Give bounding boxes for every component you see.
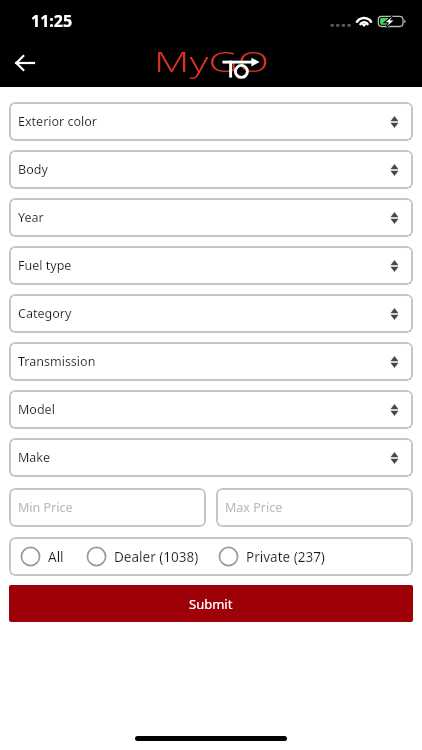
staticText: Min Price: [18, 499, 73, 516]
button[interactable]: Exterior color: [9, 102, 413, 141]
button[interactable]: Min Price: [9, 488, 206, 527]
staticText: Fuel type: [18, 257, 72, 274]
staticText: Submit: [189, 595, 233, 613]
staticText: Body: [18, 161, 48, 178]
button[interactable]: Year: [9, 198, 413, 237]
staticText: Private (237): [246, 548, 325, 566]
button[interactable]: Category: [9, 294, 413, 333]
staticText: Category: [18, 305, 72, 322]
button[interactable]: Fuel type: [9, 246, 413, 285]
button[interactable]: Body: [9, 150, 413, 189]
staticText: 11:25: [31, 10, 73, 32]
staticText: Model: [18, 401, 55, 418]
button[interactable]: All: [20, 537, 64, 576]
staticText: Dealer (1038): [114, 548, 199, 566]
staticText: Transmission: [18, 353, 96, 370]
button[interactable]: Model: [9, 390, 413, 429]
button[interactable]: Submit: [9, 585, 413, 622]
staticText: Make: [18, 449, 51, 466]
staticText: Year: [18, 209, 44, 226]
button[interactable]: Max Price: [216, 488, 413, 527]
staticText: All: [48, 548, 64, 566]
button[interactable]: Back: [6, 44, 44, 82]
button[interactable]: Dealer (1038): [86, 537, 199, 576]
button[interactable]: Make: [9, 438, 413, 477]
staticText: Exterior color: [18, 113, 98, 130]
staticText: MyGO: [154, 42, 270, 80]
button[interactable]: Private (237): [218, 537, 325, 576]
button[interactable]: Transmission: [9, 342, 413, 381]
staticText: Max Price: [225, 499, 283, 516]
